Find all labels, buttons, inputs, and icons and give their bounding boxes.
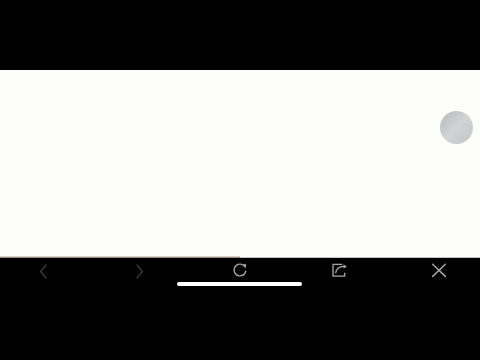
button[interactable]: Forward (128, 258, 152, 282)
button[interactable]: Share (327, 258, 351, 282)
button[interactable]: Back (31, 258, 55, 282)
other: Loading (440, 111, 473, 144)
button[interactable]: Close (427, 258, 451, 282)
button[interactable]: Reload (228, 258, 252, 282)
